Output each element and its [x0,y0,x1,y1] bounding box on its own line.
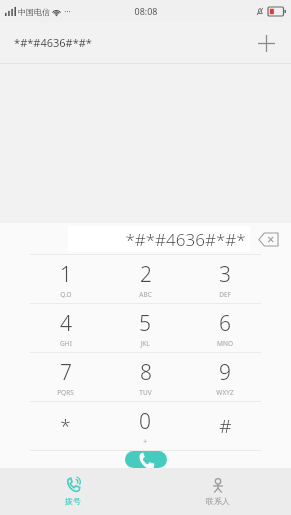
staticText: 6 [219,309,231,338]
staticText: * [60,413,71,439]
button[interactable]: 拨号 [0,468,145,515]
staticText: GHI [60,339,72,348]
staticText: JKL [140,339,150,348]
staticText: 08:08 [134,5,158,17]
staticText: *#*#4636#*#* [125,228,246,251]
button[interactable]: 2 [105,255,185,303]
button[interactable]: 6 [185,304,265,352]
staticText: PQRS [57,388,74,397]
staticText: TUV [139,388,152,397]
staticText: 4 [60,309,72,338]
staticText: 7 [60,358,72,387]
button[interactable]: Add contact [249,26,283,60]
button[interactable]: 9 [185,353,265,401]
button[interactable]: 联系人 [145,468,291,515]
button[interactable]: 7 [26,353,105,401]
staticText: 1 [60,260,72,289]
staticText: 8 [140,358,152,387]
button[interactable]: 0 [105,402,185,450]
button[interactable]: 3 [185,255,265,303]
staticText: 9 [219,358,231,387]
button[interactable]: 4 [26,304,105,352]
staticText: # [219,413,232,439]
button[interactable]: 5 [105,304,185,352]
staticText: 中国电信 [18,7,50,17]
button[interactable]: Delete [253,224,283,254]
staticText: ··· [64,6,71,17]
button[interactable]: # [185,402,265,450]
staticText: MNO [217,339,233,348]
staticText: 3 [219,260,231,289]
staticText: Q.O [60,290,72,299]
button[interactable]: *#*#4636#*#* [68,226,250,252]
staticText: *#*#4636#*#* [14,35,92,50]
staticText: 5 [139,309,151,338]
staticText: 拨号 [65,496,81,506]
button[interactable]: Call [125,451,167,468]
staticText: 0 [139,407,151,436]
staticText: 2 [140,260,152,289]
staticText: DEF [219,290,231,299]
staticText: WXYZ [216,388,234,397]
staticText: ABC [139,290,152,299]
button[interactable]: * [26,402,105,450]
button[interactable]: 1 [26,255,105,303]
button[interactable]: 8 [105,353,185,401]
staticText: 联系人 [206,496,230,506]
staticText: + [143,437,147,446]
